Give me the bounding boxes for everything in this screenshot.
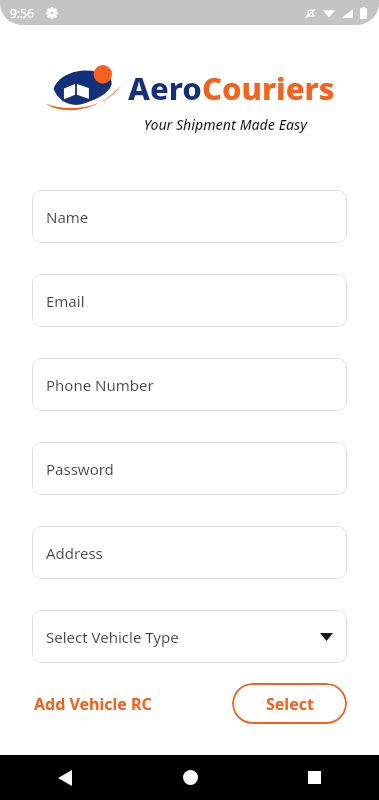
staticText: Email — [46, 291, 85, 311]
button[interactable]: Address — [32, 526, 347, 579]
button[interactable]: Back — [42, 755, 88, 800]
button[interactable]: Recent apps — [291, 755, 337, 800]
button[interactable]: Email — [32, 274, 347, 327]
button[interactable]: Home — [167, 755, 213, 800]
staticText: Couriers — [202, 67, 335, 109]
button[interactable]: Phone Number — [32, 358, 347, 411]
staticText: Select — [266, 693, 314, 715]
other: Open vehicle type dropdown — [320, 633, 333, 641]
staticText: Password — [46, 459, 114, 479]
staticText: Aero — [128, 67, 202, 109]
staticText: Select Vehicle Type — [46, 627, 179, 647]
button[interactable]: Select — [232, 683, 347, 724]
button[interactable]: Add Vehicle RC — [32, 685, 154, 723]
staticText: Name — [46, 207, 89, 227]
button[interactable]: Select Vehicle Type — [32, 610, 347, 663]
staticText: Phone Number — [46, 375, 154, 395]
button[interactable]: Password — [32, 442, 347, 495]
button[interactable]: Name — [32, 190, 347, 243]
staticText: Address — [46, 543, 103, 563]
staticText: Your Shipment Made Easy — [143, 115, 307, 134]
staticText: Add Vehicle RC — [34, 693, 152, 715]
staticText: 9:56 — [10, 5, 34, 21]
